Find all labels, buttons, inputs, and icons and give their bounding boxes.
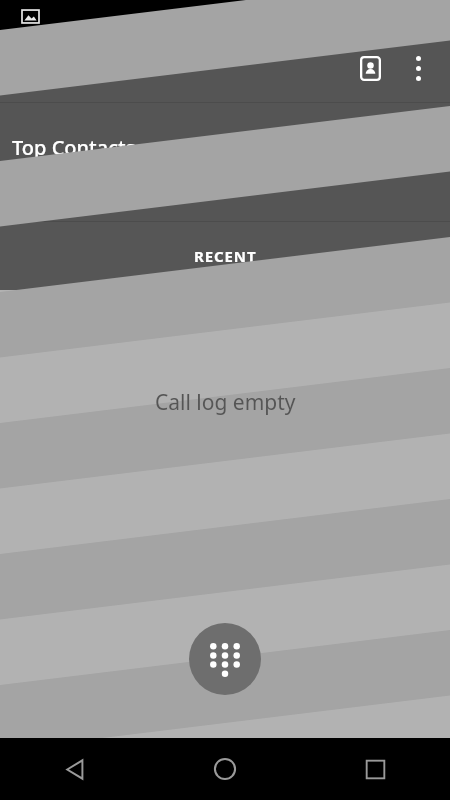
button[interactable]: Contacts — [346, 44, 394, 92]
button[interactable]: RECENT — [0, 222, 450, 290]
staticText: Call log empty — [155, 388, 296, 417]
button[interactable]: Open dialpad — [189, 623, 261, 695]
button[interactable]: Top Contacts — [0, 103, 450, 222]
button[interactable]: Recent apps — [300, 738, 450, 800]
staticText: Top Contacts — [12, 134, 136, 161]
button[interactable]: Home — [150, 738, 300, 800]
button[interactable]: Back — [0, 738, 150, 800]
staticText: RECENT — [194, 246, 257, 266]
button[interactable]: More options — [394, 44, 442, 92]
